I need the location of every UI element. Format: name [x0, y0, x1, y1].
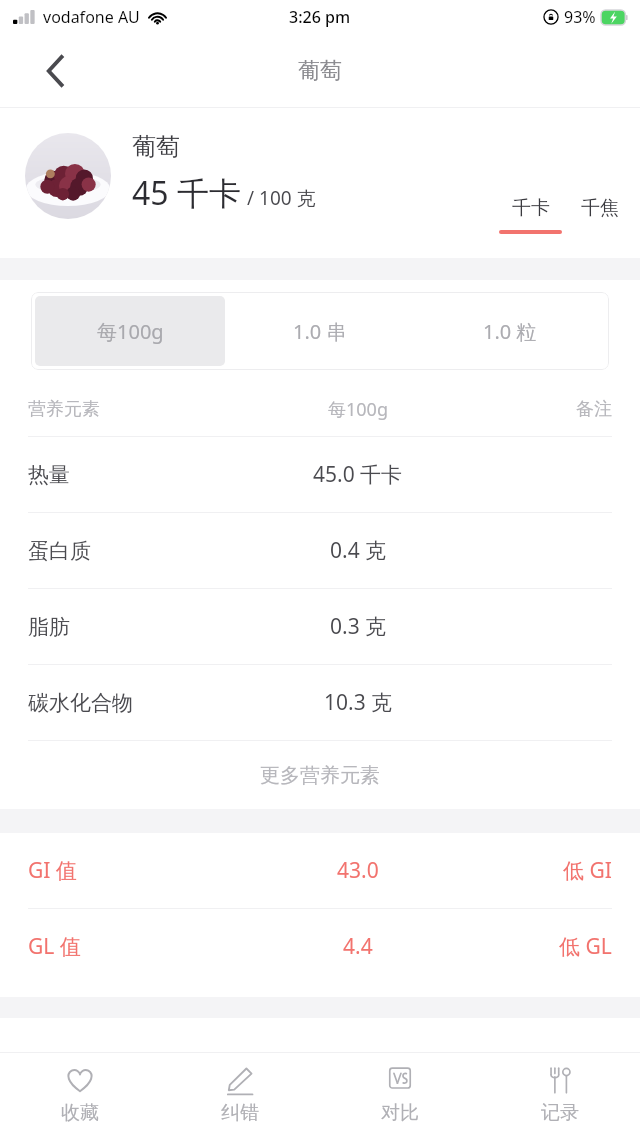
button[interactable]: 更多营养元素 [0, 741, 640, 809]
staticText: GI 值 [28, 856, 77, 885]
staticText: 93% [564, 6, 596, 28]
staticText: 0.3 克 [330, 612, 387, 641]
button[interactable]: 脂肪 [0, 589, 640, 664]
staticText: 每100g [328, 397, 388, 422]
button[interactable]: 1.0 粒 [415, 296, 605, 366]
button[interactable]: GL 值 [0, 909, 640, 984]
staticText: 葡萄 [132, 132, 180, 162]
staticText: 10.3 克 [324, 688, 393, 717]
staticText: 碳水化合物 [28, 690, 133, 716]
staticText: 0.4 克 [330, 536, 387, 565]
button[interactable]: 收藏 [0, 1053, 160, 1139]
staticText: 1.0 串 [293, 318, 347, 345]
button[interactable]: 热量 [0, 437, 640, 512]
button[interactable]: 碳水化合物 [0, 665, 640, 740]
staticText: 45.0 千卡 [313, 460, 403, 489]
staticText: 4.4 [343, 932, 373, 961]
button[interactable]: 千焦 [576, 196, 624, 220]
staticText: 45 千卡 [132, 171, 241, 215]
staticText: 记录 [541, 1101, 579, 1125]
button[interactable]: 对比 [320, 1053, 480, 1139]
staticText: 低 GL [559, 932, 612, 961]
staticText: / 100 克 [247, 185, 316, 211]
staticText: 备注 [576, 398, 612, 421]
button[interactable]: 1.0 串 [225, 296, 415, 366]
button[interactable]: 记录 [480, 1053, 640, 1139]
staticText: GL 值 [28, 932, 81, 961]
button[interactable]: 每100g [35, 296, 225, 366]
staticText: 纠错 [221, 1101, 259, 1125]
button[interactable]: 纠错 [160, 1053, 320, 1139]
staticText: 葡萄 [298, 57, 342, 85]
staticText: 蛋白质 [28, 538, 91, 564]
button[interactable]: Back [32, 48, 78, 94]
staticText: 43.0 [337, 856, 379, 885]
staticText: 1.0 粒 [483, 318, 537, 345]
staticText: 脂肪 [28, 614, 70, 640]
staticText: 更多营养元素 [260, 763, 380, 788]
button[interactable]: 蛋白质 [0, 513, 640, 588]
staticText: 收藏 [61, 1101, 99, 1125]
button[interactable]: 千卡 [494, 196, 567, 234]
staticText: 千卡 [512, 196, 550, 220]
staticText: 3:26 pm [289, 6, 351, 28]
staticText: 千焦 [581, 196, 619, 220]
staticText: 对比 [381, 1101, 419, 1125]
button[interactable]: GI 值 [0, 833, 640, 908]
staticText: 每100g [97, 318, 164, 345]
staticText: vodafone AU [43, 6, 140, 28]
staticText: 低 GI [563, 856, 612, 885]
staticText: 热量 [28, 462, 70, 488]
staticText: 营养元素 [28, 398, 100, 421]
